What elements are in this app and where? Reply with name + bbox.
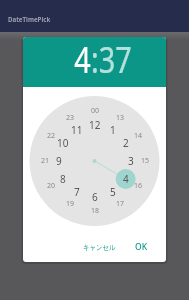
staticText: DateTimePick xyxy=(8,14,51,24)
staticText: 00 xyxy=(91,106,100,116)
button[interactable]: 4 xyxy=(74,37,91,84)
staticText: OK xyxy=(135,241,148,253)
staticText: 2 xyxy=(123,136,129,150)
staticText: 5 xyxy=(110,185,116,199)
staticText: 11 xyxy=(71,123,83,137)
staticText: :37 xyxy=(91,37,132,84)
staticText: 9 xyxy=(56,154,62,168)
button[interactable]: OK xyxy=(131,237,152,257)
staticText: 15 xyxy=(141,156,150,166)
staticText: 23 xyxy=(66,113,75,123)
staticText: 4 xyxy=(74,37,91,84)
staticText: 13 xyxy=(116,113,125,123)
button[interactable]: キャンセル xyxy=(76,239,123,256)
staticText: キャンセル xyxy=(83,243,116,252)
staticText: 22 xyxy=(47,131,56,141)
staticText: 7 xyxy=(74,185,80,199)
staticText: 16 xyxy=(134,181,143,191)
staticText: 8 xyxy=(60,172,66,186)
button[interactable]: :37 xyxy=(91,37,132,84)
staticText: 21 xyxy=(41,156,50,166)
staticText: 20 xyxy=(47,181,56,191)
staticText: 14 xyxy=(134,131,143,141)
staticText: 10 xyxy=(57,136,69,150)
staticText: 19 xyxy=(66,199,75,209)
staticText: 1 xyxy=(110,123,116,137)
staticText: 18 xyxy=(91,206,100,216)
staticText: 3 xyxy=(128,154,134,168)
staticText: 17 xyxy=(116,199,125,209)
staticText: 4 xyxy=(123,172,129,186)
staticText: 12 xyxy=(89,118,101,132)
staticText: 6 xyxy=(92,190,98,204)
